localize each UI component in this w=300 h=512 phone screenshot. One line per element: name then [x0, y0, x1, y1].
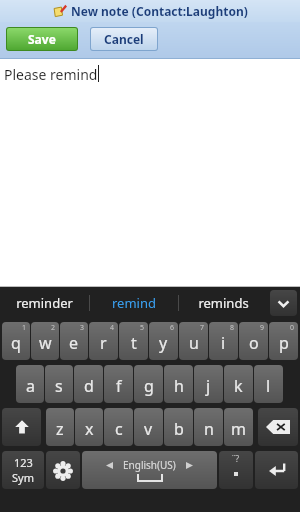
staticText: 8 — [230, 323, 235, 333]
staticText: reminder — [16, 294, 73, 312]
button[interactable]: j — [194, 365, 223, 403]
button[interactable]: 8 — [209, 322, 238, 360]
staticText: h — [174, 375, 184, 397]
button[interactable]: m — [224, 408, 253, 446]
button[interactable]: Please remind — [0, 59, 300, 287]
button[interactable]: v — [134, 408, 163, 446]
button[interactable]: remind — [90, 287, 178, 319]
staticText: 0 — [290, 323, 295, 333]
staticText: j — [206, 375, 211, 397]
staticText: o — [249, 332, 259, 354]
button[interactable]: g — [134, 365, 163, 403]
staticText: 5 — [140, 323, 145, 333]
button[interactable]: 1 — [2, 322, 30, 360]
button[interactable]: 5 — [119, 322, 148, 360]
staticText: i — [221, 332, 226, 354]
button[interactable]: 3 — [60, 322, 88, 360]
staticText: 3 — [80, 323, 85, 333]
staticText: z — [56, 418, 64, 440]
staticText: ˙˙? — [232, 452, 240, 464]
button[interactable]: a — [16, 365, 44, 403]
staticText: s — [55, 375, 63, 397]
button[interactable]: Shift — [2, 408, 41, 446]
button[interactable]: 9 — [239, 322, 268, 360]
staticText: n — [204, 418, 214, 440]
button[interactable]: h — [164, 365, 193, 403]
staticText: y — [159, 332, 168, 354]
staticText: remind — [112, 294, 156, 312]
staticText: 1 — [22, 323, 27, 333]
button[interactable]: 0 — [269, 322, 298, 360]
button[interactable]: x — [75, 408, 103, 446]
staticText: Sym — [12, 470, 34, 485]
staticText: Cancel — [104, 31, 144, 47]
staticText: Save — [28, 31, 56, 47]
button[interactable]: b — [164, 408, 193, 446]
button[interactable]: l — [254, 365, 283, 403]
button[interactable]: Save — [7, 28, 77, 50]
staticText: 7 — [200, 323, 205, 333]
staticText: reminds — [198, 294, 249, 312]
button[interactable]: f — [104, 365, 133, 403]
staticText: 4 — [110, 323, 115, 333]
staticText: f — [116, 375, 122, 397]
button[interactable]: reminder — [0, 287, 89, 319]
staticText: 2 — [51, 323, 56, 333]
staticText: b — [174, 418, 184, 440]
button[interactable]: k — [224, 365, 253, 403]
staticText: w — [39, 332, 52, 354]
button[interactable]: Punctuation — [219, 451, 253, 489]
button[interactable]: 2 — [31, 322, 59, 360]
button[interactable]: 7 — [179, 322, 208, 360]
staticText: m — [231, 418, 246, 440]
staticText: English(US) — [123, 458, 176, 472]
staticText: 9 — [260, 323, 265, 333]
staticText: Please remind — [4, 65, 98, 84]
staticText: t — [131, 332, 137, 354]
staticText: c — [115, 418, 123, 440]
staticText: r — [100, 332, 107, 354]
staticText: g — [144, 375, 154, 397]
button[interactable]: z — [46, 408, 74, 446]
staticText: v — [144, 418, 153, 440]
staticText: e — [69, 332, 79, 354]
button[interactable]: Enter — [255, 451, 298, 489]
button[interactable]: Space — [82, 451, 217, 489]
staticText: l — [266, 375, 271, 397]
staticText: x — [85, 418, 94, 440]
button[interactable]: 6 — [149, 322, 178, 360]
button[interactable]: Backspace — [258, 408, 298, 446]
staticText: d — [84, 375, 94, 397]
button[interactable]: Cancel — [91, 28, 157, 50]
staticText: 6 — [170, 323, 175, 333]
staticText: k — [234, 375, 243, 397]
button[interactable]: c — [104, 408, 133, 446]
button[interactable]: reminds — [179, 287, 267, 319]
button[interactable]: 123 — [2, 451, 44, 489]
staticText: 123 — [14, 455, 33, 470]
button[interactable]: s — [45, 365, 73, 403]
button[interactable]: Settings — [46, 451, 80, 489]
button[interactable]: 4 — [89, 322, 118, 360]
button[interactable]: n — [194, 408, 223, 446]
staticText: New note (Contact:Laughton) — [71, 3, 248, 19]
button[interactable]: d — [74, 365, 103, 403]
staticText: a — [26, 375, 35, 397]
button[interactable]: Expand suggestions — [270, 290, 297, 316]
staticText: u — [189, 332, 199, 354]
staticText: q — [11, 332, 21, 354]
staticText: p — [279, 332, 289, 354]
